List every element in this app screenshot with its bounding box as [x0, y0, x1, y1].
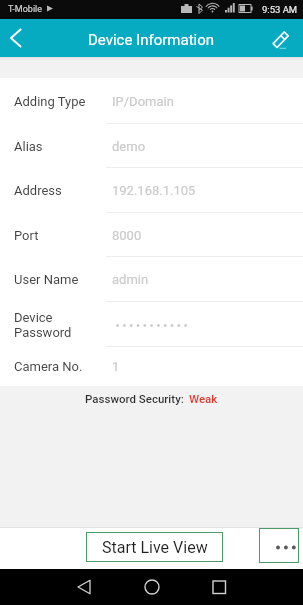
button[interactable]: User Name [0, 257, 303, 302]
staticText: Start Live View [102, 538, 208, 557]
button[interactable]: More options [259, 528, 299, 563]
staticText: 8000 [112, 228, 142, 243]
button[interactable]: Address [0, 168, 303, 213]
staticText: Device Password [14, 310, 72, 340]
staticText: 1 [112, 359, 120, 374]
staticText: 192.168.1.105 [112, 183, 196, 198]
button[interactable]: Start Live View [86, 532, 223, 562]
button[interactable]: Camera No. [0, 347, 303, 386]
button[interactable]: Edit [269, 19, 303, 57]
staticText: Device Information [88, 31, 215, 49]
staticText: 9:53 AM [262, 4, 298, 15]
button[interactable]: Device Password [0, 302, 303, 347]
staticText: Weak [189, 392, 218, 405]
staticText: Camera No. [14, 359, 83, 374]
staticText: Alias [14, 139, 43, 154]
staticText: Address [14, 183, 62, 198]
staticText: admin [112, 272, 149, 287]
staticText: User Name [14, 272, 79, 287]
button[interactable]: Port [0, 213, 303, 257]
button[interactable]: Back [0, 19, 34, 57]
staticText: IP/Domain [112, 94, 174, 109]
button[interactable]: Alias [0, 124, 303, 168]
staticText: Adding Type [14, 94, 86, 109]
button[interactable]: Adding Type [0, 78, 303, 124]
staticText: demo [112, 139, 146, 154]
staticText: T-Mobile [8, 4, 43, 15]
staticText: Password Security: [85, 392, 184, 405]
staticText: Port [14, 228, 39, 243]
